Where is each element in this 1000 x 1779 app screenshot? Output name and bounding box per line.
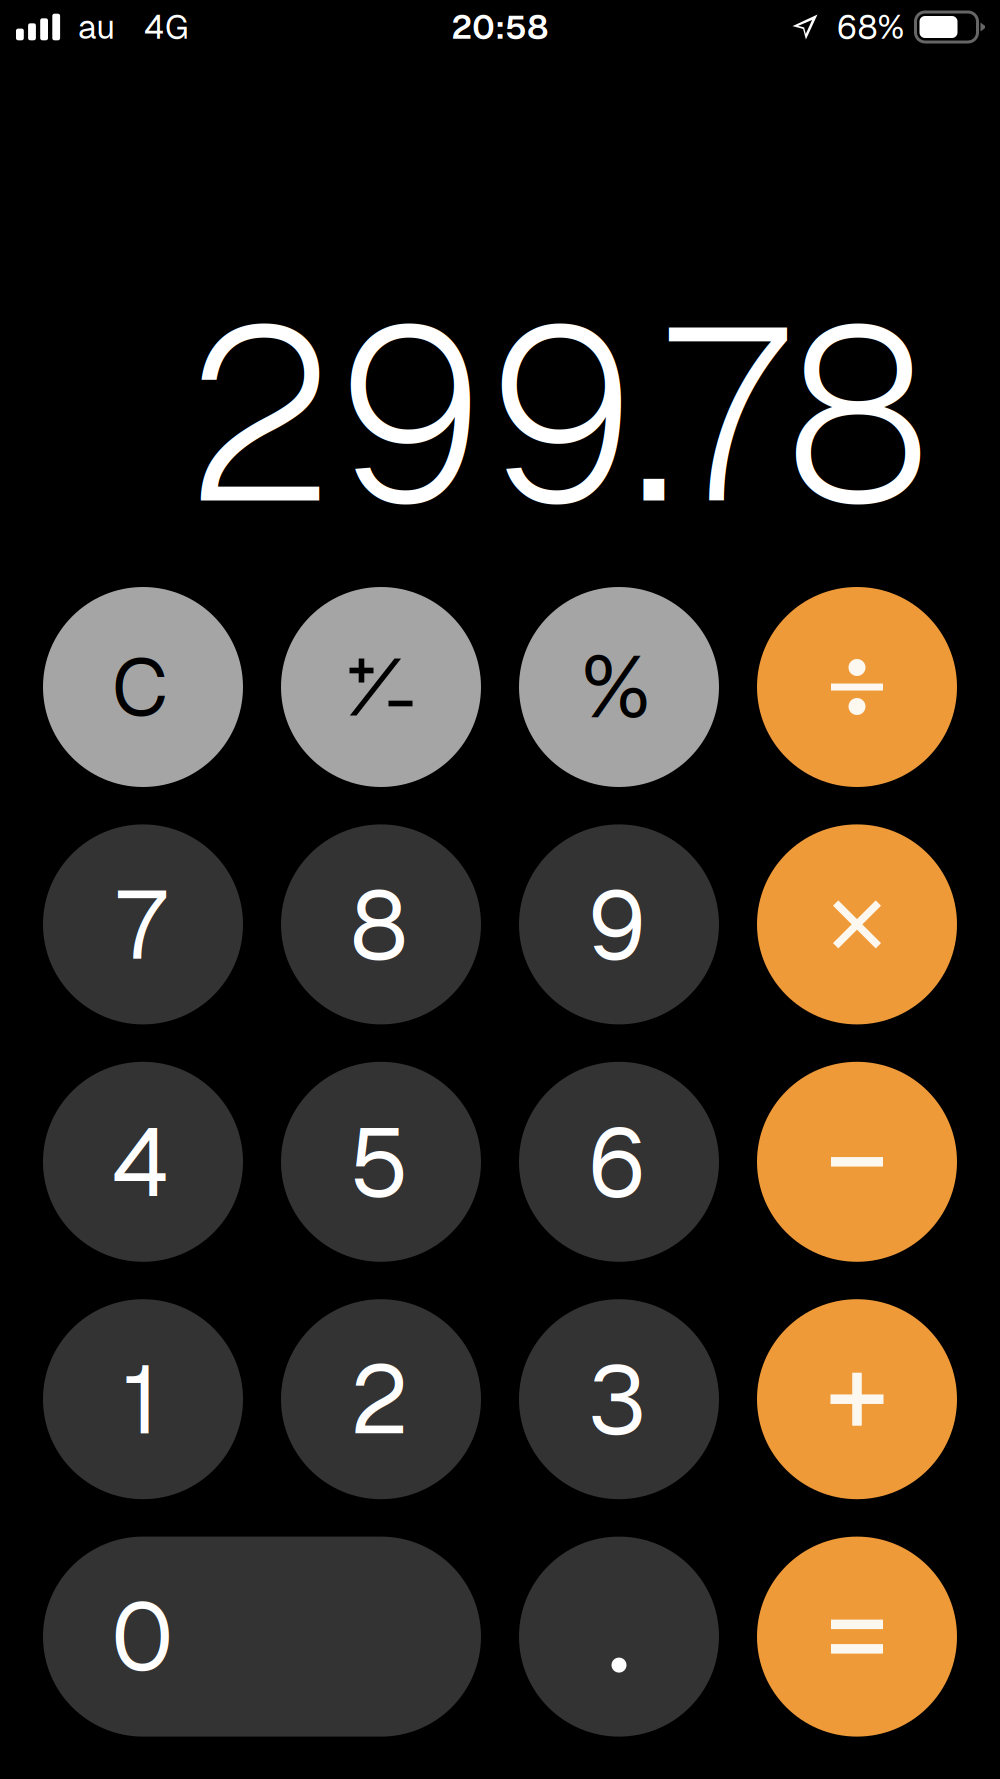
staticText: 20:58 (451, 5, 549, 49)
button[interactable]: 6 (519, 1062, 719, 1262)
button[interactable]: C (43, 587, 243, 787)
staticText: 5 (349, 1099, 409, 1224)
staticText: 4 (111, 1099, 170, 1224)
staticText: C (112, 635, 168, 739)
button[interactable]: Add (757, 1299, 957, 1499)
button[interactable]: % (519, 587, 719, 787)
staticText: % (581, 631, 650, 743)
button[interactable]: Equals (757, 1537, 957, 1737)
staticText: 2 (349, 1337, 408, 1462)
staticText: 4G (144, 5, 188, 49)
button[interactable]: 9 (519, 824, 719, 1024)
staticText: 9 (587, 862, 647, 987)
staticText: 8 (350, 862, 408, 987)
button[interactable]: Plus or minus (281, 587, 481, 787)
staticText: au (78, 5, 115, 49)
button[interactable]: Multiply (757, 824, 957, 1024)
staticText: 1 (122, 1337, 159, 1462)
button[interactable]: 5 (281, 1062, 481, 1262)
button[interactable]: 4 (43, 1062, 243, 1262)
staticText: 7 (116, 862, 166, 987)
button[interactable]: 2 (281, 1299, 481, 1499)
button[interactable]: Subtract (757, 1062, 957, 1262)
button[interactable]: 0 (43, 1537, 481, 1737)
button[interactable]: 3 (519, 1299, 719, 1499)
button[interactable]: 7 (43, 824, 243, 1024)
staticText: 6 (587, 1099, 647, 1224)
button[interactable]: 8 (281, 824, 481, 1024)
button[interactable]: 1 (43, 1299, 243, 1499)
staticText: 3 (587, 1337, 646, 1462)
staticText: 68% (836, 5, 904, 49)
button[interactable]: Decimal point (519, 1537, 719, 1737)
staticText: 0 (111, 1575, 174, 1698)
staticText: 299.78 (185, 256, 931, 572)
button[interactable]: Divide (757, 587, 957, 787)
